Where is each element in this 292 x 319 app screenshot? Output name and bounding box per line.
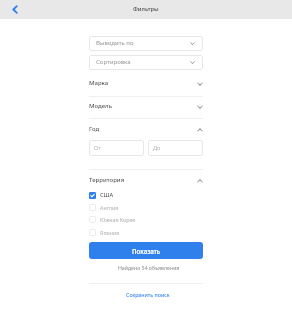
button[interactable]: Выводить по bbox=[89, 36, 203, 51]
button[interactable]: Сортировка bbox=[89, 55, 203, 70]
staticText: Англия bbox=[100, 204, 119, 211]
staticText: От bbox=[94, 144, 101, 152]
staticText: Сортировка bbox=[96, 58, 131, 66]
button[interactable]: Марка bbox=[89, 76, 203, 89]
button[interactable]: Территория bbox=[89, 173, 203, 186]
button[interactable]: Южная Корея bbox=[89, 215, 203, 223]
button[interactable]: США bbox=[89, 191, 203, 199]
staticText: Фильтры bbox=[133, 5, 159, 13]
staticText: Год bbox=[89, 125, 100, 133]
button[interactable]: Модель bbox=[89, 99, 203, 112]
button[interactable]: Сохранить поиск bbox=[3, 289, 292, 300]
button[interactable]: Показать bbox=[89, 242, 203, 259]
staticText: Япония bbox=[100, 229, 120, 236]
button[interactable]: До bbox=[148, 140, 203, 156]
button[interactable]: От bbox=[89, 140, 144, 156]
staticText: Найдено 54 объявления bbox=[118, 264, 180, 271]
staticText: Южная Корея bbox=[100, 216, 136, 223]
staticText: Модель bbox=[89, 102, 113, 110]
button[interactable]: Год bbox=[89, 122, 203, 135]
button[interactable]: Back bbox=[8, 2, 23, 17]
staticText: До bbox=[153, 144, 161, 152]
staticText: Сохранить поиск bbox=[126, 291, 170, 298]
staticText: США bbox=[100, 191, 114, 199]
staticText: Выводить по bbox=[96, 39, 134, 47]
staticText: Марка bbox=[89, 79, 109, 87]
button[interactable]: Япония bbox=[89, 228, 203, 236]
button[interactable]: Англия bbox=[89, 203, 203, 211]
staticText: Территория bbox=[89, 176, 125, 184]
staticText: Показать bbox=[132, 247, 161, 255]
